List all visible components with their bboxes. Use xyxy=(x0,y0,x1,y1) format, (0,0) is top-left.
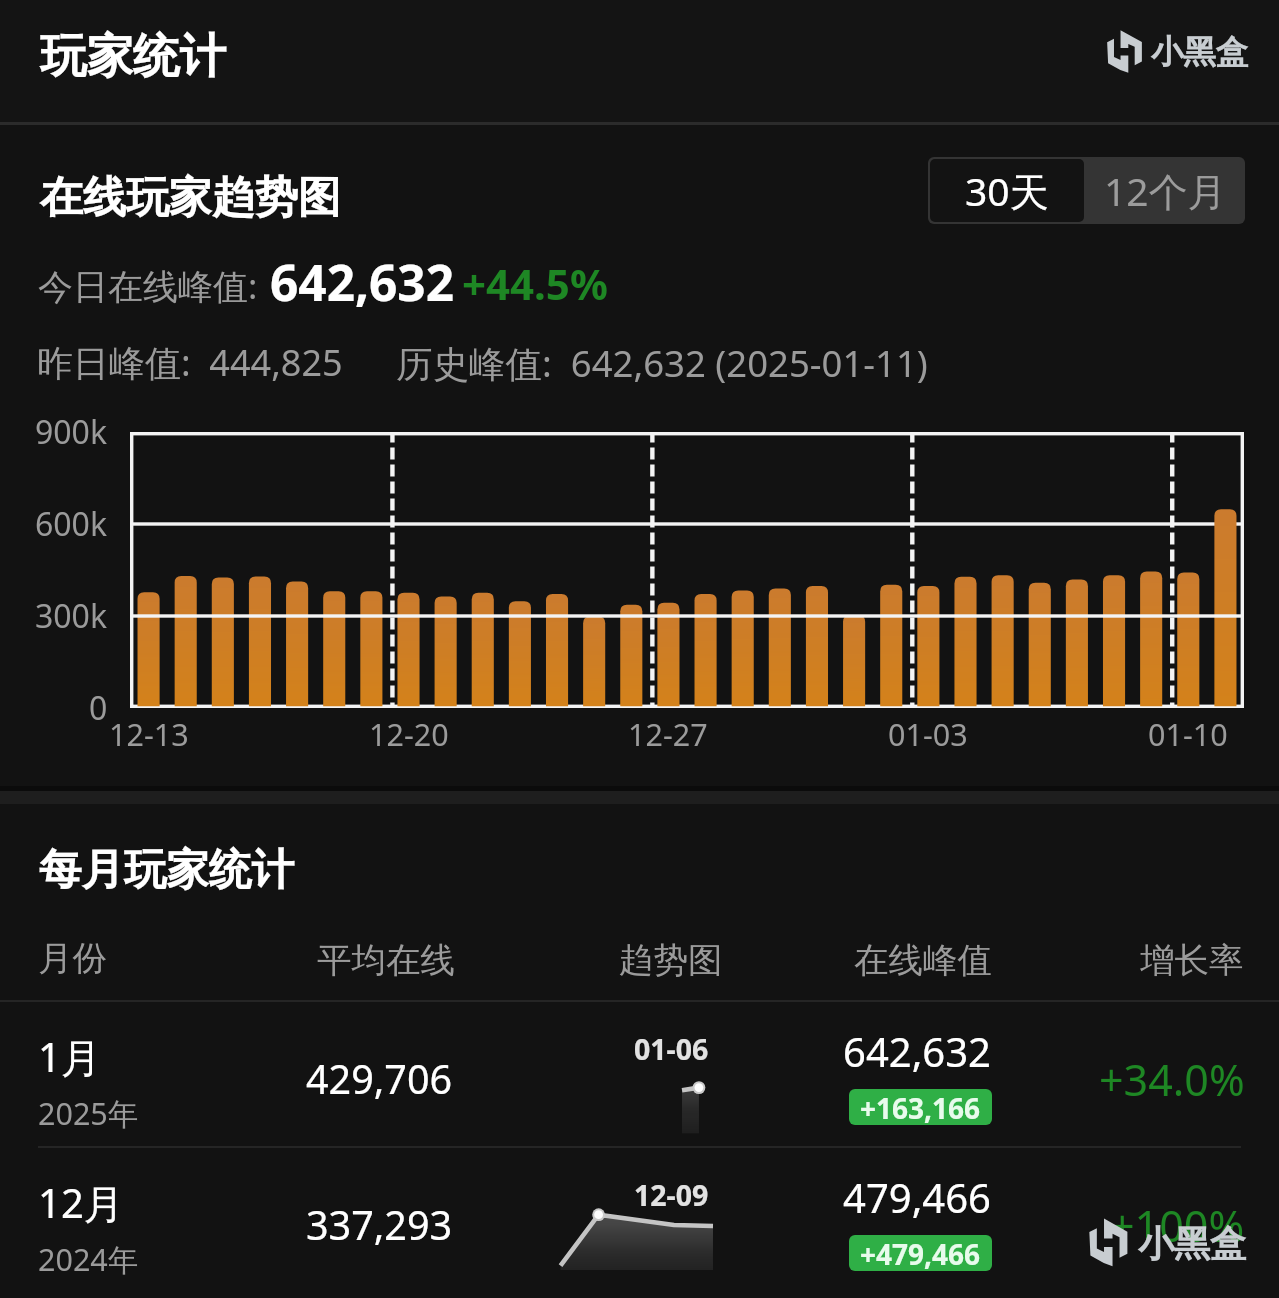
button[interactable]: 12月 xyxy=(0,1148,1279,1294)
staticText: 在线峰值 xyxy=(854,939,992,982)
staticText: 600k xyxy=(35,502,108,546)
staticText: +34.0% xyxy=(1099,1050,1245,1109)
staticText: 479,466 xyxy=(843,1170,991,1224)
staticText: 平均在线 xyxy=(317,939,455,982)
button[interactable]: 小黑盒 xyxy=(1105,28,1248,77)
button[interactable]: 12个月 xyxy=(1086,157,1245,224)
staticText: 1月 xyxy=(38,1029,101,1084)
staticText: +100% xyxy=(1110,1196,1245,1255)
staticText: 642,632 xyxy=(270,248,454,315)
staticText: 30天 xyxy=(965,164,1049,217)
staticText: +163,166 xyxy=(860,1089,981,1125)
staticText: 小黑盒 xyxy=(1151,32,1248,73)
staticText: 玩家统计 xyxy=(40,27,226,86)
staticText: 01-03 xyxy=(888,713,968,755)
staticText: +44.5% xyxy=(462,255,608,312)
button[interactable]: 1月 xyxy=(0,1002,1279,1148)
staticText: +479,466 xyxy=(860,1235,981,1271)
staticText: 2024年 xyxy=(38,1238,139,1280)
staticText: 增长率 xyxy=(1140,939,1244,982)
staticText: 小黑盒 xyxy=(1138,1221,1246,1266)
staticText: 12月 xyxy=(38,1175,124,1230)
staticText: 历史峰值: 642,632 (2025-01-11) xyxy=(396,338,928,388)
staticText: 337,293 xyxy=(306,1198,453,1252)
staticText: 趋势图 xyxy=(619,939,723,982)
staticText: 300k xyxy=(35,594,108,638)
button[interactable]: 30天 xyxy=(928,157,1086,224)
staticText: 12-27 xyxy=(628,713,708,755)
staticText: 900k xyxy=(35,410,108,454)
staticText: 12个月 xyxy=(1104,164,1227,217)
staticText: 0 xyxy=(89,686,108,730)
staticText: 月份 xyxy=(38,937,107,980)
staticText: 每月玩家统计 xyxy=(39,843,294,897)
staticText: 2025年 xyxy=(38,1092,139,1134)
staticText: 12-13 xyxy=(109,713,189,755)
staticText: 01-06 xyxy=(634,1030,709,1069)
staticText: 01-10 xyxy=(1148,713,1228,755)
staticText: 12-20 xyxy=(369,713,449,755)
staticText: 429,706 xyxy=(306,1052,453,1106)
staticText: 今日在线峰值: xyxy=(38,262,258,310)
staticText: 642,632 xyxy=(843,1024,991,1078)
staticText: 12-09 xyxy=(634,1176,709,1215)
staticText: 在线玩家趋势图 xyxy=(40,171,341,225)
staticText: 昨日峰值: 444,825 xyxy=(37,338,343,387)
